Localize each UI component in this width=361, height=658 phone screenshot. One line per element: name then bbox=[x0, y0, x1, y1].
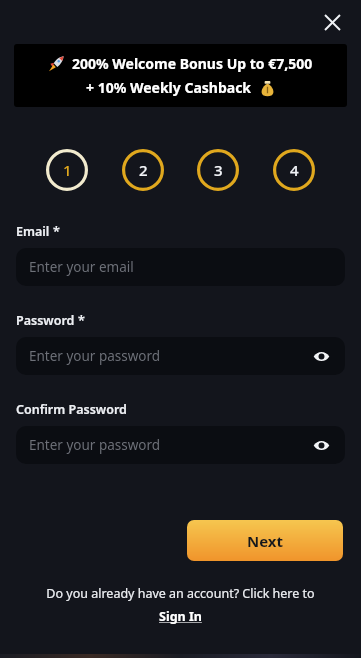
staticText: Enter your email bbox=[29, 258, 134, 276]
staticText: 3 bbox=[214, 160, 223, 180]
staticText: Do you already have an account? Click he… bbox=[46, 585, 315, 602]
button[interactable]: Show password bbox=[309, 433, 333, 457]
button[interactable]: Show password bbox=[309, 344, 333, 368]
button[interactable]: 3 bbox=[197, 149, 239, 191]
button[interactable]: 4 bbox=[273, 149, 315, 191]
staticText: * bbox=[78, 312, 85, 329]
staticText: Email bbox=[16, 223, 50, 240]
staticText: + 10% Weekly Cashback bbox=[86, 78, 252, 97]
staticText: Confirm Password bbox=[16, 401, 127, 418]
staticText: Next bbox=[247, 531, 284, 551]
button[interactable]: Enter your password bbox=[16, 426, 345, 464]
staticText: 4 bbox=[290, 160, 299, 180]
staticText: Enter your password bbox=[29, 436, 161, 454]
staticText: Sign In bbox=[159, 608, 202, 625]
staticText: Enter your password bbox=[29, 347, 161, 365]
button[interactable]: Close bbox=[315, 5, 349, 39]
button[interactable]: Enter your password bbox=[16, 337, 345, 375]
button[interactable]: Next bbox=[187, 520, 343, 561]
staticText: * bbox=[53, 223, 60, 240]
staticText: Password bbox=[16, 312, 75, 329]
button[interactable]: 2 bbox=[122, 149, 164, 191]
staticText: 1 bbox=[63, 160, 72, 180]
button[interactable]: Do you already have an account? Click he… bbox=[0, 585, 361, 625]
button[interactable]: 200% Welcome Bonus Up to €7,500 bbox=[14, 44, 347, 107]
staticText: 200% Welcome Bonus Up to €7,500 bbox=[72, 54, 313, 73]
staticText: 2 bbox=[139, 160, 148, 180]
button[interactable]: Enter your email bbox=[16, 248, 345, 286]
button[interactable]: 1 bbox=[46, 149, 88, 191]
